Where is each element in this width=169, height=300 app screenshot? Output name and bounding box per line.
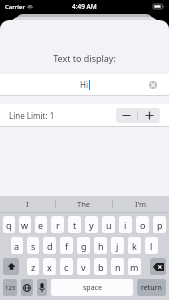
staticText: t — [73, 219, 77, 231]
staticText: i — [124, 219, 127, 231]
button[interactable]: Dictation — [37, 279, 47, 296]
staticText: 123 — [5, 284, 16, 292]
button[interactable]: a — [11, 237, 23, 254]
button[interactable]: i — [119, 216, 132, 233]
button[interactable]: v — [77, 258, 90, 275]
staticText: d — [47, 240, 53, 252]
button[interactable]: s — [27, 237, 39, 254]
button[interactable]: q — [3, 216, 15, 233]
button[interactable]: Increase line limit — [138, 108, 160, 123]
staticText: k — [132, 240, 137, 252]
button[interactable]: x — [43, 258, 56, 275]
button[interactable]: u — [102, 216, 115, 233]
staticText: g — [81, 240, 87, 252]
staticText: w — [21, 219, 29, 231]
staticText: r — [56, 219, 60, 231]
button[interactable]: l — [145, 237, 158, 254]
button[interactable]: w — [19, 216, 31, 233]
staticText: The — [77, 199, 91, 209]
staticText: l — [150, 240, 153, 252]
staticText: I'm — [135, 199, 147, 209]
button[interactable]: Hi — [0, 74, 169, 95]
staticText: Text to display: — [0, 52, 169, 64]
button[interactable]: b — [94, 258, 107, 275]
button[interactable]: The — [56, 196, 112, 212]
button[interactable]: I — [0, 196, 55, 212]
staticText: e — [38, 219, 44, 231]
staticText: q — [6, 219, 12, 231]
staticText: p — [157, 219, 163, 231]
button[interactable]: h — [94, 237, 107, 254]
staticText: f — [65, 240, 69, 252]
button[interactable]: return — [137, 279, 166, 296]
staticText: y — [89, 219, 94, 231]
button[interactable]: d — [43, 237, 56, 254]
staticText: o — [140, 219, 146, 231]
staticText: m — [130, 261, 139, 273]
button[interactable]: I'm — [113, 196, 169, 212]
button[interactable]: e — [35, 216, 47, 233]
button[interactable]: Change keyboard — [21, 279, 33, 296]
button[interactable]: p — [153, 216, 166, 233]
staticText: n — [115, 261, 121, 273]
staticText: I — [26, 199, 29, 209]
staticText: Line Limit: 1 — [9, 110, 55, 121]
button[interactable]: Backspace — [150, 258, 166, 275]
staticText: space — [83, 283, 102, 293]
button[interactable]: Shift — [3, 258, 19, 275]
button[interactable]: o — [136, 216, 149, 233]
button[interactable]: f — [60, 237, 73, 254]
staticText: return — [141, 283, 162, 293]
staticText: h — [98, 240, 104, 252]
button[interactable]: j — [111, 237, 124, 254]
button[interactable]: Decrease line limit — [116, 108, 137, 123]
staticText: v — [81, 261, 86, 273]
button[interactable]: k — [128, 237, 141, 254]
staticText: s — [31, 240, 36, 252]
button[interactable]: 123 — [3, 279, 17, 296]
staticText: Carrier — [5, 3, 25, 11]
button[interactable]: t — [68, 216, 81, 233]
staticText: x — [47, 261, 52, 273]
staticText: c — [64, 261, 69, 273]
button[interactable]: space — [51, 279, 133, 296]
button[interactable]: n — [111, 258, 124, 275]
button[interactable]: g — [77, 237, 90, 254]
button[interactable]: r — [51, 216, 64, 233]
button[interactable]: Clear text — [147, 79, 159, 91]
staticText: z — [31, 261, 36, 273]
staticText: a — [14, 240, 20, 252]
button[interactable]: m — [128, 258, 141, 275]
staticText: Hi — [80, 79, 88, 90]
staticText: u — [106, 219, 112, 231]
button[interactable]: c — [60, 258, 73, 275]
staticText: j — [116, 240, 119, 252]
button[interactable]: z — [27, 258, 39, 275]
button[interactable]: y — [85, 216, 98, 233]
staticText: b — [98, 261, 104, 273]
staticText: 4:49 AM — [72, 2, 97, 11]
